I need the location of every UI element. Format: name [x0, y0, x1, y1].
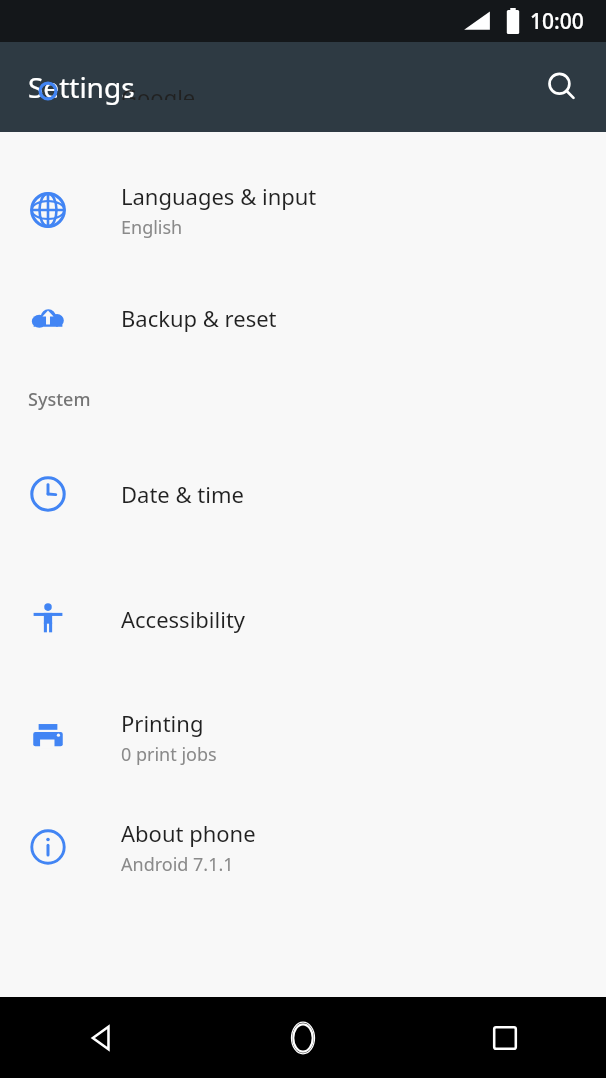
staticText: Google: [121, 82, 196, 100]
staticText: Android 7.1.1: [121, 852, 234, 877]
button[interactable]: Back: [0, 997, 202, 1078]
staticText: Printing: [121, 708, 204, 738]
staticText: Backup & reset: [121, 303, 277, 333]
button[interactable]: Recent apps: [404, 997, 606, 1078]
staticText: Accessibility: [121, 604, 246, 634]
button[interactable]: Backup & reset: [0, 270, 606, 366]
staticText: Languages & input: [121, 181, 317, 211]
staticText: System: [28, 387, 91, 412]
staticText: Settings: [28, 68, 135, 106]
staticText: Date & time: [121, 479, 244, 509]
button[interactable]: Google: [0, 82, 606, 100]
staticText: About phone: [121, 818, 256, 848]
button[interactable]: Home: [202, 997, 404, 1078]
staticText: English: [121, 215, 183, 240]
staticText: 0 print jobs: [121, 742, 217, 767]
button[interactable]: Accessibility: [0, 556, 606, 682]
staticText: 10:00: [530, 7, 584, 36]
button[interactable]: About phone: [0, 792, 606, 902]
button[interactable]: Date & time: [0, 432, 606, 556]
button[interactable]: Search: [534, 59, 590, 115]
button[interactable]: Printing: [0, 682, 606, 792]
button[interactable]: Languages & input: [0, 150, 606, 270]
